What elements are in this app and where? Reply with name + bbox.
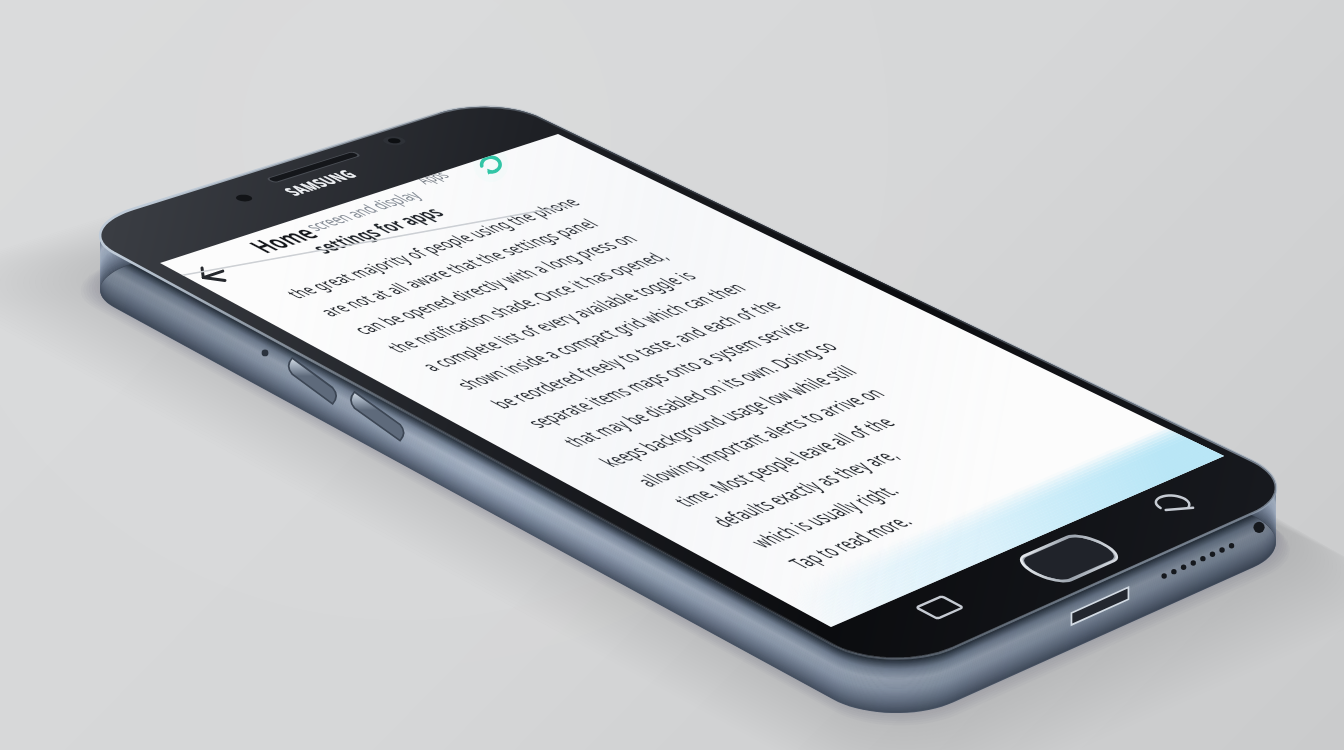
button[interactable]: Phone showing an article screen (0, 0, 1344, 750)
